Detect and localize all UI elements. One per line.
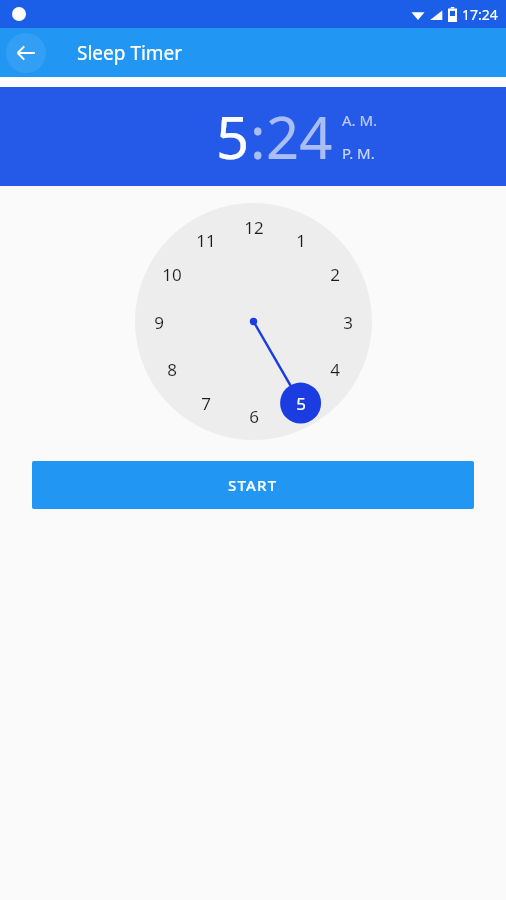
button[interactable]: 7 [189, 390, 223, 416]
button[interactable]: 3 [331, 309, 365, 335]
button[interactable]: 24 [266, 97, 333, 176]
button[interactable]: 8 [155, 356, 189, 382]
button[interactable]: 1 [135, 203, 372, 440]
staticText: 7 [201, 392, 211, 415]
button[interactable]: 9 [142, 309, 176, 335]
staticText: 12 [244, 216, 264, 239]
button[interactable]: 5 [216, 97, 250, 176]
staticText: 5 [296, 392, 306, 415]
staticText: START [228, 475, 278, 495]
button[interactable]: 2 [318, 261, 352, 287]
staticText: 9 [154, 311, 164, 334]
staticText: 17:24 [462, 5, 498, 24]
button[interactable]: 4 [318, 356, 352, 382]
staticText: 1 [296, 229, 306, 252]
staticText: 3 [343, 311, 353, 334]
button[interactable]: 5 [284, 390, 318, 416]
staticText: A. M. [342, 110, 378, 130]
button[interactable]: 6 [237, 403, 271, 429]
button[interactable]: 12 [237, 214, 271, 240]
staticText: 4 [330, 358, 340, 381]
button[interactable]: A. M. [342, 110, 378, 130]
staticText: 10 [162, 263, 182, 286]
staticText: 11 [196, 229, 216, 252]
staticText: 2 [330, 263, 340, 286]
button[interactable]: 10 [155, 261, 189, 287]
button[interactable]: START [32, 461, 474, 509]
staticText: Sleep Timer [77, 40, 183, 66]
staticText: P. M. [342, 143, 375, 163]
button[interactable]: P. M. [342, 143, 375, 163]
button[interactable]: Back [6, 33, 46, 73]
staticText: : [250, 97, 266, 176]
staticText: 8 [167, 358, 177, 381]
button[interactable]: 11 [189, 227, 223, 253]
button[interactable]: 1 [284, 227, 318, 253]
staticText: 6 [249, 405, 259, 428]
